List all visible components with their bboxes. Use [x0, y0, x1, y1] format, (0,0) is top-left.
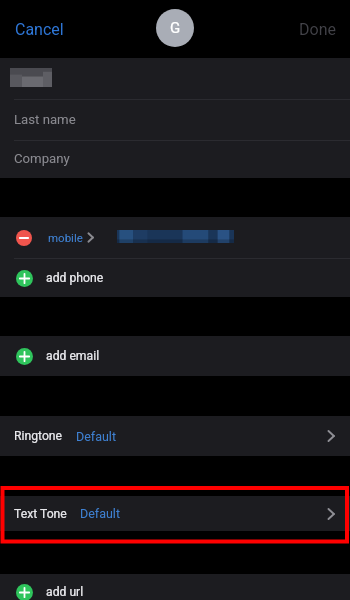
- button[interactable]: [0, 58, 350, 99]
- staticText: add url: [46, 585, 84, 599]
- staticText: Ringtone: [14, 429, 63, 443]
- staticText: Last name: [14, 112, 76, 127]
- staticText: G: [170, 19, 181, 37]
- button[interactable]: Contact photo: [156, 9, 194, 47]
- button[interactable]: add url: [0, 579, 350, 600]
- staticText: add phone: [46, 271, 104, 285]
- staticText: Cancel: [15, 20, 64, 39]
- staticText: add email: [46, 349, 100, 363]
- staticText: Default: [76, 429, 116, 444]
- button[interactable]: add phone: [0, 259, 350, 297]
- button[interactable]: add email: [0, 336, 350, 376]
- staticText: Text Tone: [14, 507, 67, 521]
- staticText: Company: [14, 151, 70, 166]
- button[interactable]: Done: [299, 20, 336, 39]
- button[interactable]: Ringtone: [0, 416, 350, 456]
- button[interactable]: mobile: [0, 217, 350, 258]
- staticText: Default: [80, 506, 120, 521]
- staticText: Done: [299, 20, 336, 39]
- button[interactable]: Text Tone: [0, 496, 350, 531]
- button[interactable]: Company: [0, 141, 350, 178]
- button[interactable]: Last name: [0, 100, 350, 140]
- staticText: mobile: [48, 231, 83, 244]
- button[interactable]: Cancel: [15, 20, 64, 39]
